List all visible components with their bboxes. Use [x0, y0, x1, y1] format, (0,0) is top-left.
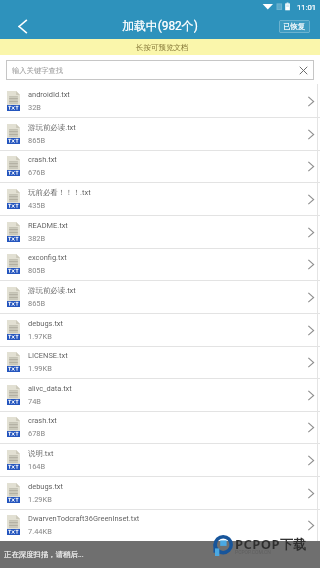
button[interactable]: androidId.txt [0, 84, 320, 118]
button[interactable]: 输入关键字查找 [6, 60, 314, 80]
button[interactable]: exconfig.txt [0, 247, 320, 281]
staticText: 164B [28, 462, 46, 471]
staticText: 382B [28, 234, 46, 243]
button[interactable]: LICENSE.txt [0, 345, 320, 379]
staticText: debugs.txt [28, 319, 63, 328]
button[interactable]: debugs.txt [0, 476, 320, 510]
staticText: 1.97KB [28, 332, 52, 341]
staticText: debugs.txt [28, 482, 63, 491]
staticText: 1.29KB [28, 495, 52, 504]
staticText: 正在深度扫描，请稍后... [4, 550, 84, 559]
staticText: 输入关键字查找 [12, 66, 64, 75]
staticText: DwarvenTodcraft36GreenInset.txt [28, 514, 140, 523]
button[interactable]: 游玩前必读.txt [0, 117, 320, 151]
staticText: alivc_data.txt [28, 384, 72, 393]
staticText: 说明.txt [28, 449, 54, 458]
staticText: 1.99KB [28, 364, 52, 373]
button[interactable]: debugs.txt [0, 313, 320, 347]
button[interactable]: alivc_data.txt [0, 378, 320, 412]
staticText: 678B [28, 429, 46, 438]
button[interactable]: crash.txt [0, 410, 320, 444]
staticText: 加载中(982个) [122, 19, 198, 34]
button[interactable]: 玩前必看！！！.txt [0, 182, 320, 216]
staticText: 玩前必看！！！.txt [28, 188, 91, 197]
button[interactable]: README.txt [0, 215, 320, 249]
staticText: LICENSE.txt [28, 351, 68, 360]
staticText: PCPOP.COM.CN [235, 549, 271, 555]
staticText: 已恢复 [283, 22, 306, 31]
staticText: README.txt [28, 221, 68, 230]
staticText: 865B [28, 299, 46, 308]
staticText: crash.txt [28, 155, 57, 164]
staticText: 32B [28, 103, 41, 112]
staticText: 676B [28, 168, 46, 177]
staticText: 游玩前必读.txt [28, 286, 76, 295]
staticText: androidId.txt [28, 90, 70, 99]
staticText: PCPOP下载 [235, 535, 307, 553]
staticText: 865B [28, 136, 46, 145]
button[interactable]: DwarvenTodcraft36GreenInset.txt [0, 508, 320, 542]
staticText: 7.44KB [28, 527, 52, 536]
staticText: 游玩前必读.txt [28, 123, 76, 132]
staticText: 74B [28, 397, 41, 406]
staticText: 11:01 [297, 3, 317, 12]
button[interactable]: Back [0, 14, 42, 39]
button[interactable]: 游玩前必读.txt [0, 280, 320, 314]
button[interactable]: 说明.txt [0, 443, 320, 477]
staticText: crash.txt [28, 416, 57, 425]
button[interactable]: 已恢复 [279, 20, 310, 33]
staticText: 435B [28, 201, 46, 210]
staticText: 长按可预览文档 [136, 43, 189, 52]
staticText: 805B [28, 266, 46, 275]
button[interactable]: crash.txt [0, 149, 320, 183]
staticText: exconfig.txt [28, 253, 67, 262]
